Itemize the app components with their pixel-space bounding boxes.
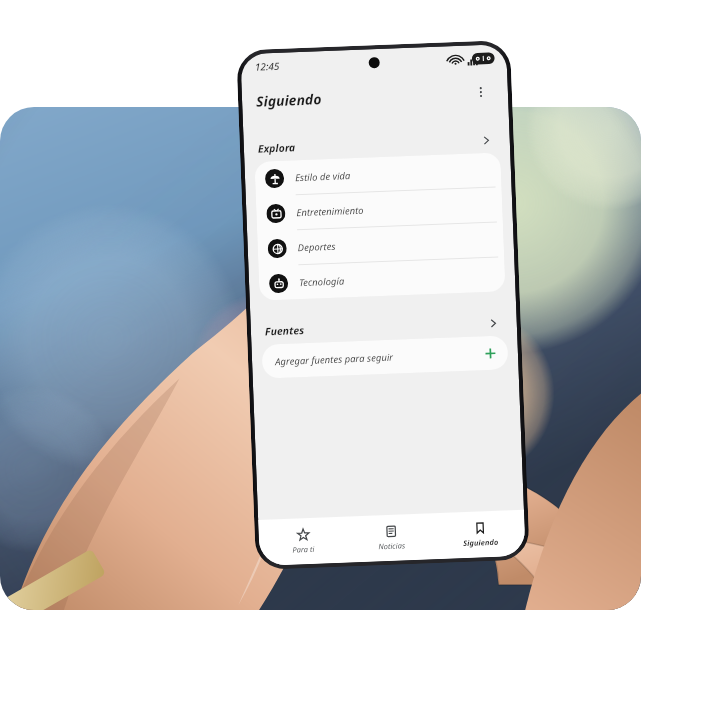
button[interactable]: Agregar fuentes para seguir: [261, 335, 508, 379]
button[interactable]: Noticias: [346, 523, 436, 552]
staticText: Entretenimiento: [296, 199, 492, 219]
button[interactable]: Más opciones: [467, 79, 494, 106]
staticText: Para ti: [292, 544, 314, 555]
staticText: 12:45: [254, 59, 280, 74]
staticText: Siguiendo: [463, 537, 499, 548]
staticText: Fuentes: [265, 323, 305, 338]
staticText: Agregar fuentes para seguir: [275, 347, 484, 368]
button[interactable]: Ver más Explora: [475, 130, 496, 150]
staticText: Noticias: [378, 540, 405, 551]
staticText: Tecnología: [299, 269, 495, 289]
button[interactable]: Deportes: [257, 222, 504, 266]
button[interactable]: Tecnología: [258, 257, 505, 301]
button[interactable]: Ver más Fuentes: [482, 312, 503, 333]
button[interactable]: Para ti: [258, 527, 347, 556]
button[interactable]: Entretenimiento: [256, 187, 503, 231]
button[interactable]: Siguiendo: [435, 520, 525, 549]
staticText: Siguiendo: [256, 89, 322, 111]
staticText: Explora: [258, 140, 296, 156]
staticText: Deportes: [297, 234, 494, 254]
button[interactable]: Estilo de vida: [254, 152, 501, 196]
staticText: Estilo de vida: [295, 164, 491, 184]
